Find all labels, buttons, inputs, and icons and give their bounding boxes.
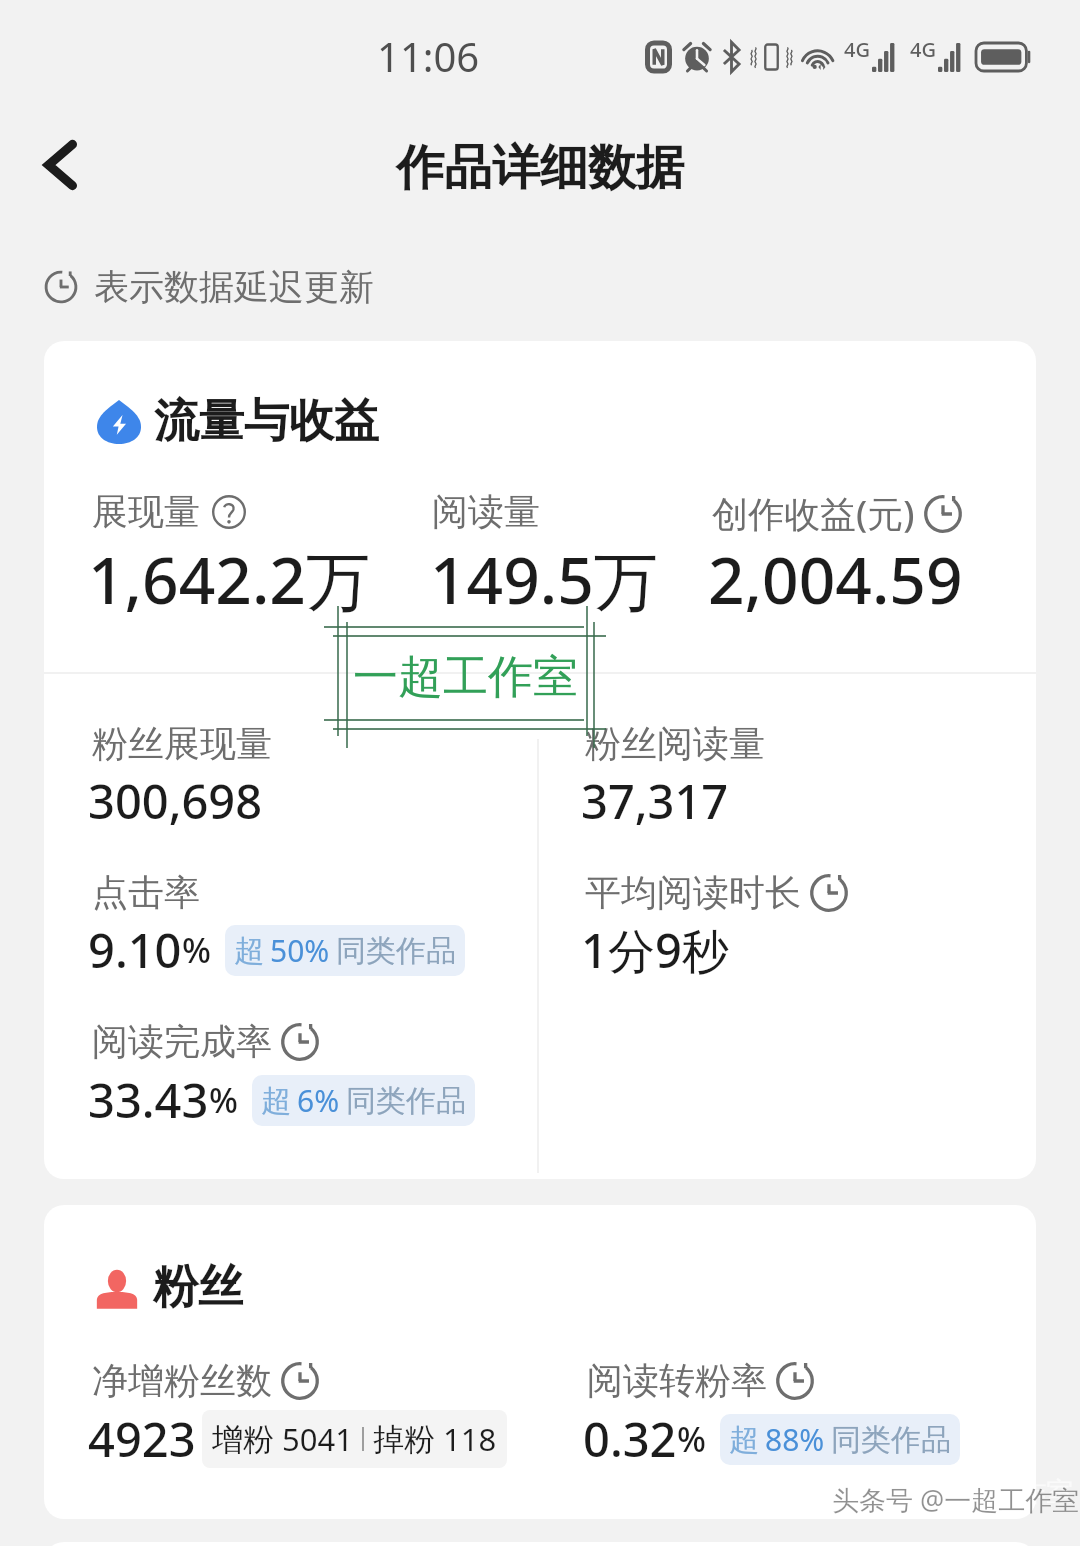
staticText: 掉粉 xyxy=(373,1420,435,1459)
staticText: 33.43 xyxy=(88,1068,209,1132)
staticText: 阅读量 xyxy=(432,489,540,534)
staticText: 4G xyxy=(910,36,936,63)
staticText: 11:06 xyxy=(377,29,480,83)
staticText: 149.5万 xyxy=(430,536,658,623)
staticText: 同类作品 xyxy=(336,932,456,970)
button[interactable]: 粉丝 xyxy=(44,1205,1036,1519)
staticText: 粉丝展现量 xyxy=(92,721,272,766)
button[interactable]: Back xyxy=(22,126,100,204)
staticText: 粉丝 xyxy=(153,1259,243,1316)
staticText: 流量与收益 xyxy=(154,393,379,450)
staticText: 4923 xyxy=(88,1407,196,1471)
staticText: % xyxy=(209,1077,238,1123)
staticText: 同类作品 xyxy=(346,1082,466,1120)
staticText: % xyxy=(677,1416,706,1462)
staticText: 1,642.2万 xyxy=(88,536,370,623)
staticText: % xyxy=(182,927,211,973)
staticText: 超 xyxy=(729,1421,759,1459)
staticText: 头条号 @一超工作室 xyxy=(826,1472,1074,1509)
staticText: 6% xyxy=(297,1080,340,1121)
staticText: 37,317 xyxy=(581,769,729,833)
staticText: 1分9秒 xyxy=(581,918,729,982)
staticText: 平均阅读时长 xyxy=(585,870,801,915)
button[interactable]: What is impressions xyxy=(212,495,246,529)
button[interactable]: 流量与收益 xyxy=(44,341,1036,1179)
staticText: 同类作品 xyxy=(831,1421,951,1459)
staticText: 阅读转粉率 xyxy=(587,1358,767,1403)
staticText: 2,004.59 xyxy=(708,536,963,623)
staticText: 一超工作室 xyxy=(353,649,578,706)
staticText: 118 xyxy=(443,1418,497,1460)
staticText: 88% xyxy=(765,1419,825,1460)
staticText: 粉丝阅读量 xyxy=(585,721,765,766)
staticText: 展现量 xyxy=(92,489,200,534)
staticText: 作品详细数据 xyxy=(396,138,684,198)
staticText: 表示数据延迟更新 xyxy=(94,265,374,309)
staticText: 头条号 @一超工作室 xyxy=(832,1481,1080,1518)
staticText: 点击率 xyxy=(92,870,200,915)
staticText: 超 xyxy=(261,1082,291,1120)
staticText: 0.32 xyxy=(583,1407,677,1471)
staticText: 阅读完成率 xyxy=(92,1019,272,1064)
staticText: 9.10 xyxy=(88,918,182,982)
staticText: 净增粉丝数 xyxy=(92,1358,272,1403)
staticText: 300,698 xyxy=(88,769,263,833)
staticText: 5041 xyxy=(282,1418,353,1460)
staticText: 增粉 xyxy=(212,1420,274,1459)
staticText: 4G xyxy=(844,36,870,63)
staticText: 创作收益(元) xyxy=(712,489,915,538)
staticText: 超 xyxy=(234,932,264,970)
staticText: 50% xyxy=(270,930,330,971)
